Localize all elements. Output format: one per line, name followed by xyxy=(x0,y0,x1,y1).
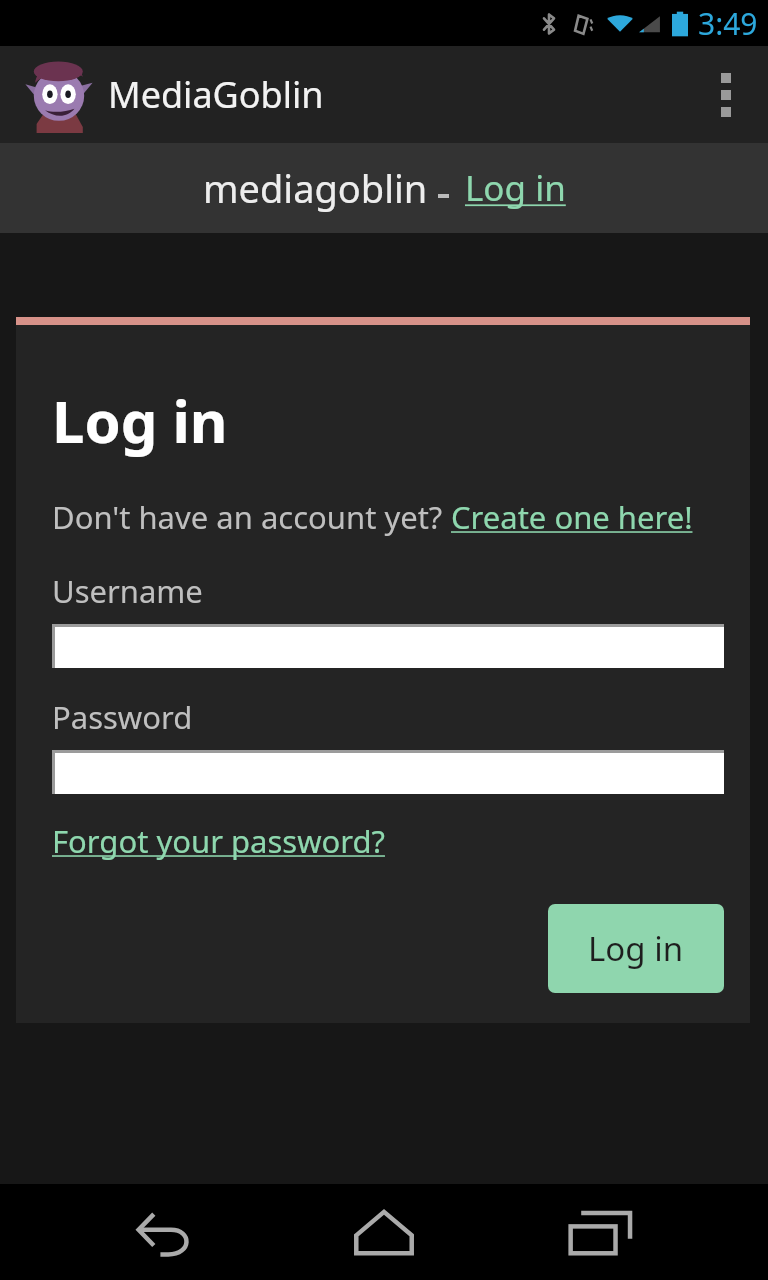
staticText: Password xyxy=(52,696,193,738)
staticText: MediaGoblin xyxy=(108,70,324,119)
button[interactable]: Log in xyxy=(548,904,724,993)
button[interactable]: Recent apps xyxy=(551,1192,651,1272)
staticText: Log in xyxy=(588,926,684,971)
staticText: Don't have an account yet? xyxy=(52,496,451,538)
staticText: Forgot your password? xyxy=(52,820,385,862)
button[interactable]: Home xyxy=(334,1192,434,1272)
button[interactable]: More options xyxy=(702,65,750,125)
staticText: Log in xyxy=(465,164,566,212)
button[interactable]: Create one here! xyxy=(451,496,693,538)
button[interactable]: Forgot your password? xyxy=(52,820,385,862)
staticText: mediagoblin xyxy=(203,162,428,214)
button[interactable]: Log in xyxy=(465,164,566,212)
staticText: Log in xyxy=(52,381,228,460)
staticText: Create one here! xyxy=(451,496,693,538)
staticText: Username xyxy=(52,570,203,612)
button[interactable]: Back xyxy=(117,1192,217,1272)
staticText: 3:49 xyxy=(698,3,758,44)
